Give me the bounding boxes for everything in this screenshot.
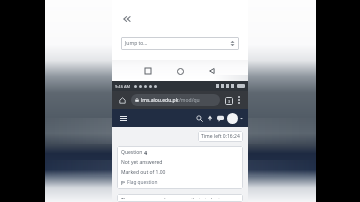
- button[interactable]: Home: [172, 63, 188, 79]
- staticText: 4: [144, 149, 148, 156]
- staticText: Question: [121, 149, 144, 156]
- staticText: The: [121, 197, 131, 199]
- staticText: lms.aiou.edu.pk: [141, 97, 179, 104]
- staticText: approaches ensure that students: [145, 197, 223, 199]
- staticText: Not yet answered: [121, 159, 163, 166]
- button[interactable]: Search: [194, 113, 205, 124]
- button[interactable]: Notifications: [205, 113, 215, 123]
- button[interactable]: Messages: [215, 113, 225, 123]
- button[interactable]: Jump to...: [121, 37, 239, 50]
- button[interactable]: Tabs: [223, 95, 234, 106]
- button[interactable]: Home: [116, 94, 129, 107]
- staticText: Marked out of 1.00: [121, 169, 166, 176]
- button[interactable]: Collapse: [120, 12, 134, 26]
- button[interactable]: Menu: [117, 112, 129, 124]
- staticText: 9:46 AM: [115, 84, 131, 89]
- button[interactable]: lms.aiou.edu.pk: [131, 94, 220, 106]
- button[interactable]: More options: [234, 95, 244, 105]
- button[interactable]: Recent apps: [140, 63, 156, 79]
- staticText: Jump to...: [125, 40, 230, 47]
- staticText: Flag question: [127, 179, 158, 186]
- staticText: 3: [228, 99, 231, 104]
- button[interactable]: Account: [227, 113, 243, 124]
- staticText: /mod/qu: [179, 97, 200, 104]
- button[interactable]: Flag question: [121, 179, 158, 186]
- button[interactable]: Back: [204, 63, 220, 79]
- staticText: Time left 0:16:24: [201, 133, 240, 140]
